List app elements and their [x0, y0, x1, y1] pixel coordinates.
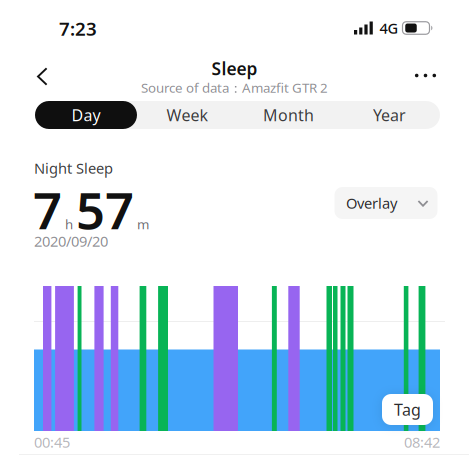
staticText: 57 — [76, 176, 134, 243]
button[interactable]: Overlay — [334, 187, 437, 219]
staticText: 7:23 — [59, 16, 97, 41]
button[interactable]: Week — [137, 101, 238, 129]
staticText: m — [137, 215, 149, 233]
button[interactable]: Tag — [382, 394, 433, 425]
staticText: Source of data：Amazfit GTR 2 — [141, 79, 328, 96]
staticText: 00:45 — [34, 432, 70, 452]
button[interactable]: More — [405, 64, 446, 87]
staticText: Overlay — [346, 193, 397, 213]
staticText: 4G — [379, 18, 398, 38]
staticText: Year — [373, 104, 406, 126]
staticText: Day — [71, 104, 100, 126]
staticText: Night Sleep — [34, 158, 113, 178]
staticText: 08:42 — [404, 432, 440, 452]
staticText: Tag — [394, 399, 421, 420]
staticText: Week — [166, 104, 208, 126]
staticText: 7 — [33, 176, 62, 243]
staticText: Month — [263, 104, 314, 126]
staticText: Sleep — [211, 57, 257, 80]
button[interactable]: Day — [35, 101, 137, 129]
button[interactable]: Month — [238, 101, 339, 129]
button[interactable]: Year — [339, 101, 440, 129]
staticText: h — [65, 215, 73, 233]
button[interactable]: Back — [25, 55, 60, 98]
staticText: 2020/09/20 — [34, 231, 108, 251]
